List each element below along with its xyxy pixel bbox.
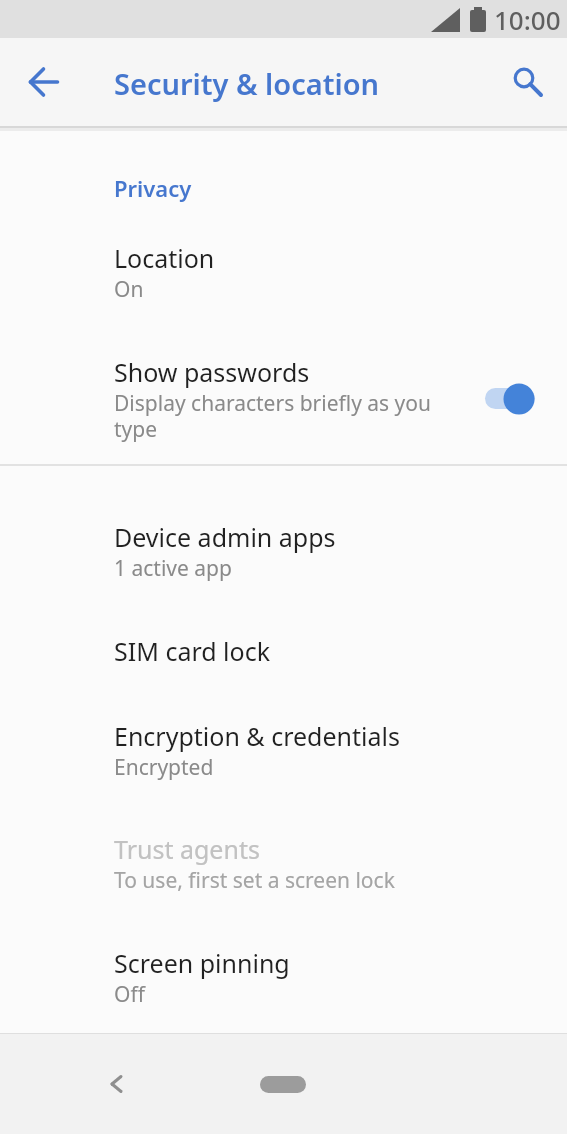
button[interactable]: Screen pinning [0,935,567,1019]
staticText: On [114,275,144,304]
button[interactable] [92,1060,140,1108]
staticText: Screen pinning [114,946,290,980]
button[interactable]: Location [0,230,567,314]
staticText: Location [114,241,215,275]
staticText: Show passwords [114,355,310,389]
staticText: Display characters briefly as you type [114,389,432,444]
staticText: Off [114,980,145,1009]
button[interactable] [496,54,552,110]
staticText: 1 active app [114,554,232,583]
button[interactable]: Encryption & credentials [0,708,567,792]
button[interactable] [478,371,553,427]
staticText: Privacy [114,173,192,203]
staticText: Encrypted [114,753,214,782]
button[interactable]: SIM card lock [0,611,567,691]
button[interactable]: Trust agents [0,821,567,905]
staticText: Trust agents [114,832,260,866]
button[interactable]: Show passwords [0,349,567,449]
staticText: To use, first set a screen lock [114,866,395,895]
staticText: Encryption & credentials [114,719,400,753]
staticText: 10:00 [494,2,561,37]
staticText: Security & location [114,64,380,103]
staticText: Device admin apps [114,520,336,554]
staticText: SIM card lock [114,634,271,668]
button[interactable]: Device admin apps [0,509,567,593]
button[interactable] [16,54,72,110]
button[interactable] [255,1070,311,1098]
